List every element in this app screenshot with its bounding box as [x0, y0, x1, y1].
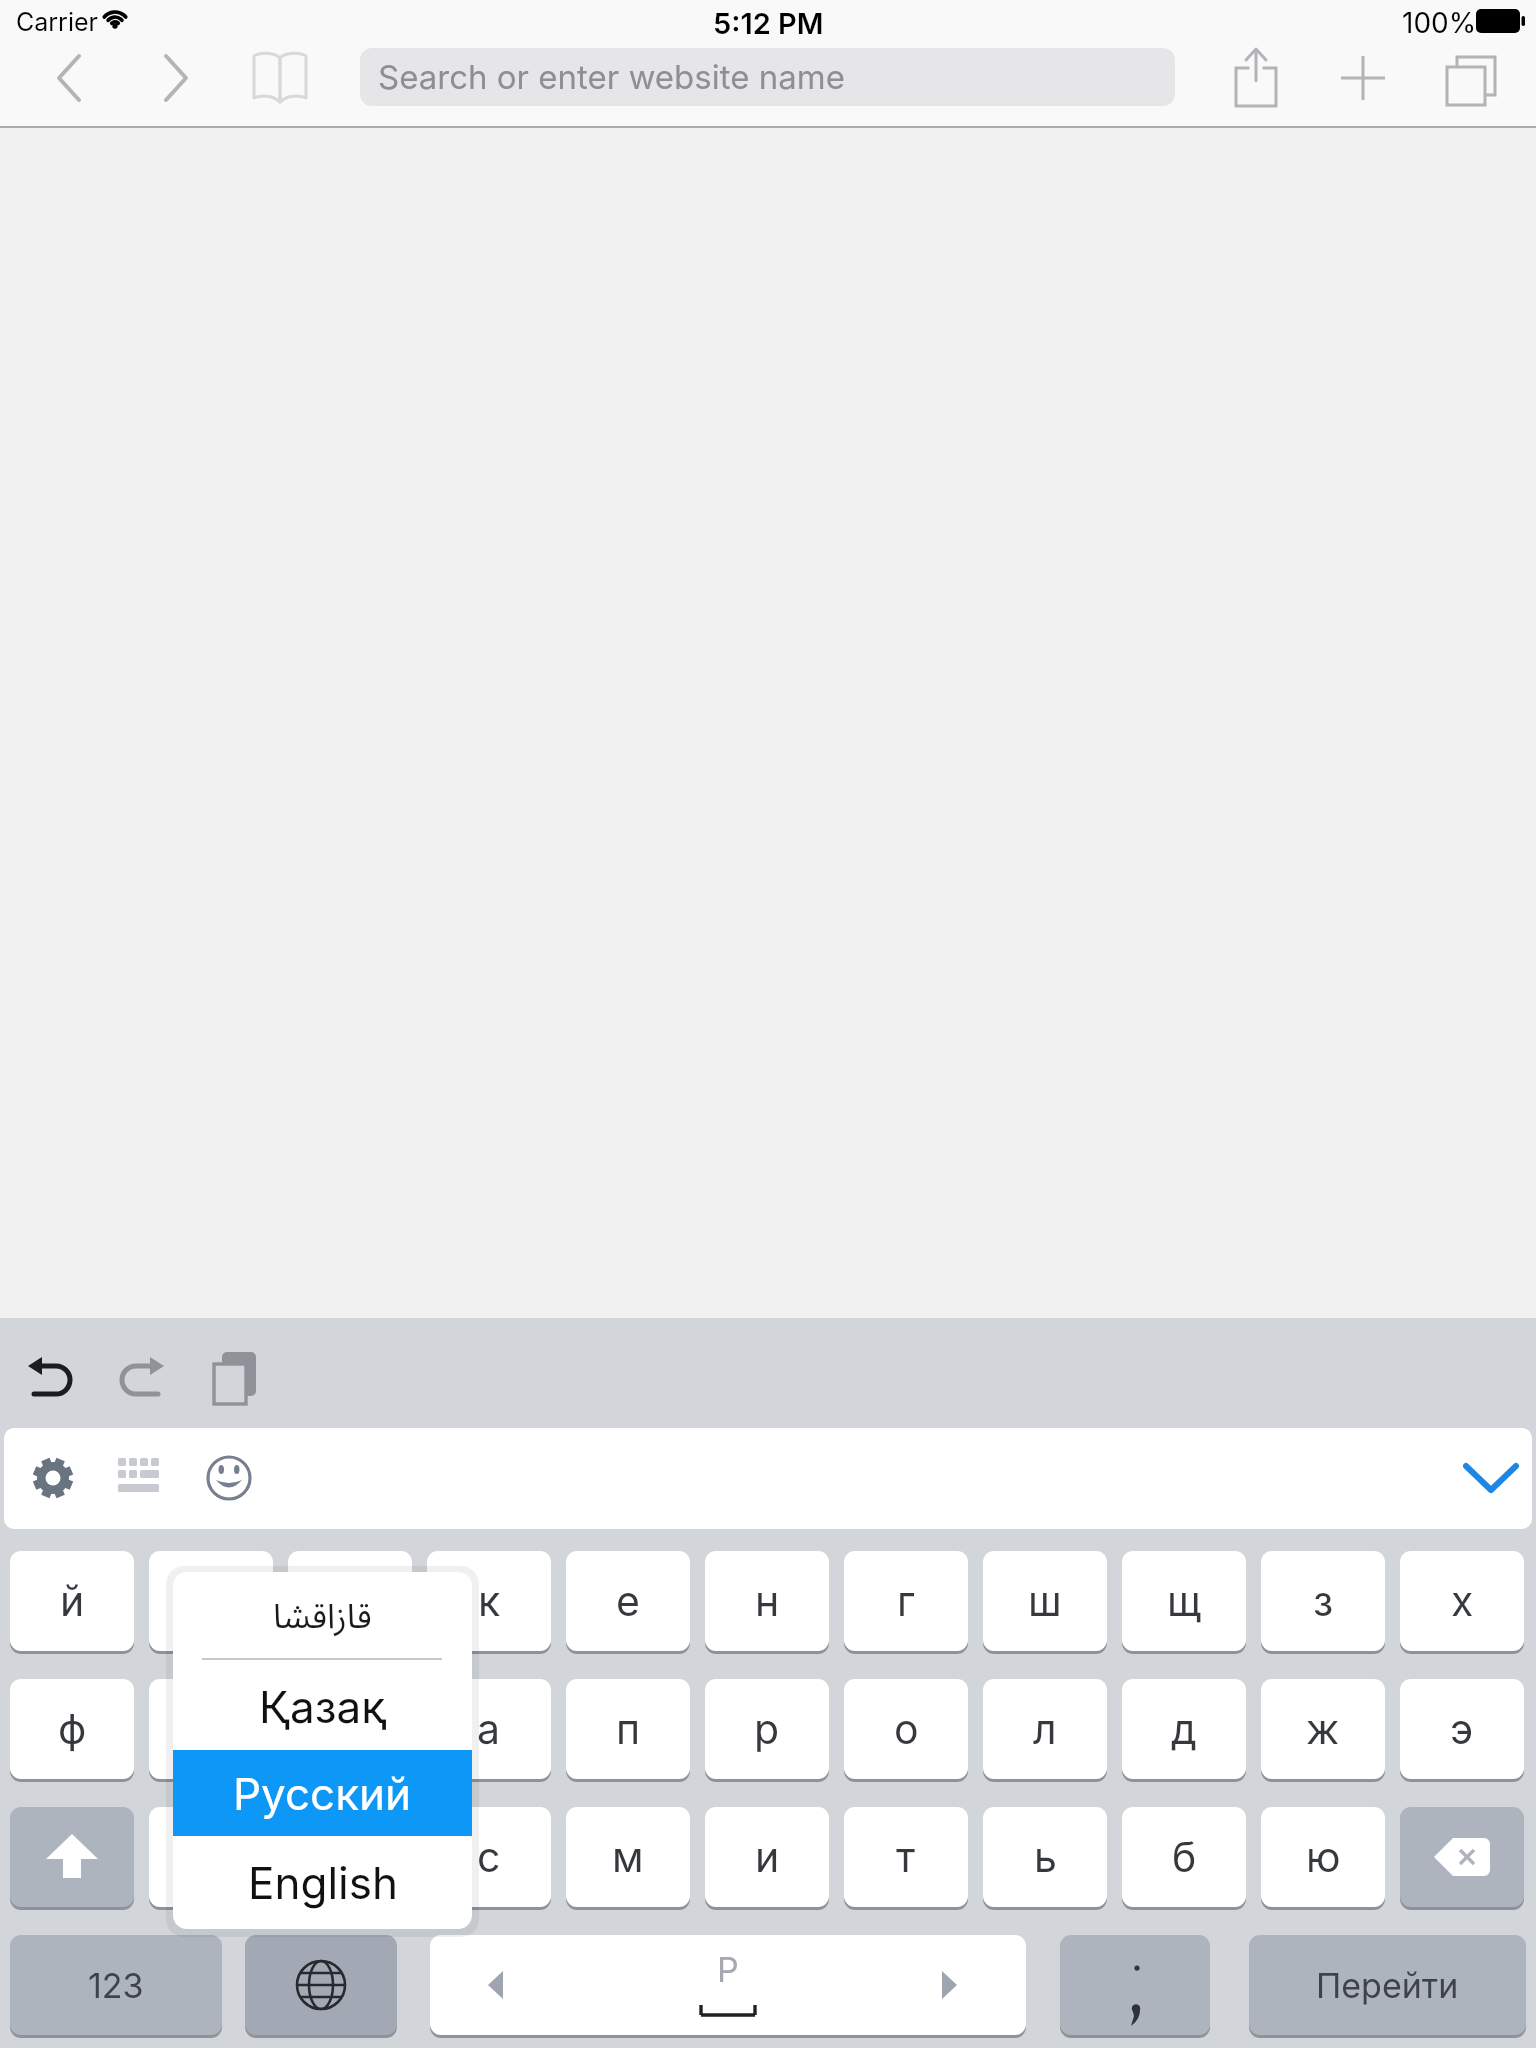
- staticText: и: [755, 1832, 780, 1882]
- staticText: ю: [1306, 1832, 1341, 1882]
- button[interactable]: ж: [1261, 1679, 1385, 1779]
- staticText: 100%: [1402, 6, 1477, 40]
- button[interactable]: ш: [983, 1551, 1107, 1651]
- staticText: Р: [717, 1949, 739, 1990]
- button[interactable]: ч: [288, 1807, 412, 1907]
- staticText: я: [200, 1832, 223, 1882]
- button[interactable]: قازاقشا: [173, 1577, 472, 1653]
- staticText: о: [894, 1704, 919, 1754]
- staticText: Перейти: [1316, 1965, 1459, 2006]
- staticText: Search or enter website name: [378, 57, 845, 97]
- staticText: х: [1451, 1576, 1474, 1626]
- staticText: English: [248, 1856, 398, 1909]
- button[interactable]: [245, 1935, 397, 2035]
- button[interactable]: [10, 1807, 134, 1907]
- button[interactable]: [118, 1356, 166, 1404]
- button[interactable]: [118, 1458, 166, 1498]
- button[interactable]: з: [1261, 1551, 1385, 1651]
- button[interactable]: [1444, 54, 1498, 108]
- staticText: в: [338, 1704, 362, 1754]
- staticText: ш: [1028, 1576, 1062, 1626]
- staticText: з: [1313, 1576, 1334, 1626]
- staticText: й: [60, 1576, 85, 1626]
- staticText: л: [1033, 1704, 1057, 1754]
- staticText: ч: [338, 1832, 362, 1882]
- staticText: ь: [1034, 1832, 1057, 1882]
- button[interactable]: н: [705, 1551, 829, 1651]
- button[interactable]: т: [844, 1807, 968, 1907]
- button[interactable]: р: [705, 1679, 829, 1779]
- button[interactable]: ю: [1261, 1807, 1385, 1907]
- button[interactable]: е: [566, 1551, 690, 1651]
- button[interactable]: х: [1400, 1551, 1524, 1651]
- button[interactable]: Р: [430, 1935, 1026, 2035]
- button[interactable]: [26, 1356, 74, 1404]
- button[interactable]: [157, 52, 193, 104]
- button[interactable]: о: [844, 1679, 968, 1779]
- staticText: ж: [1306, 1704, 1340, 1754]
- button[interactable]: с: [427, 1807, 551, 1907]
- staticText: ф: [58, 1704, 87, 1754]
- button[interactable]: [30, 1455, 76, 1501]
- button[interactable]: Search or enter website name: [360, 48, 1175, 106]
- staticText: Қазақ: [259, 1680, 386, 1733]
- staticText: قازاقشا: [273, 1592, 372, 1638]
- button[interactable]: English: [173, 1836, 472, 1929]
- button[interactable]: б: [1122, 1807, 1246, 1907]
- staticText: щ: [1167, 1576, 1202, 1626]
- staticText: р: [754, 1704, 780, 1754]
- button[interactable]: щ: [1122, 1551, 1246, 1651]
- button[interactable]: [210, 1352, 260, 1406]
- button[interactable]: я: [149, 1807, 273, 1907]
- staticText: 5:12 PM: [713, 6, 824, 41]
- button[interactable]: Перейти: [1249, 1935, 1526, 2035]
- staticText: 123: [88, 1965, 144, 2006]
- button[interactable]: э: [1400, 1679, 1524, 1779]
- button[interactable]: ы: [149, 1679, 273, 1779]
- button[interactable]: п: [566, 1679, 690, 1779]
- button[interactable]: [1463, 1463, 1519, 1495]
- staticText: е: [616, 1576, 640, 1626]
- staticText: п: [616, 1704, 641, 1754]
- button[interactable]: и: [705, 1807, 829, 1907]
- button[interactable]: ф: [10, 1679, 134, 1779]
- staticText: н: [755, 1576, 780, 1626]
- staticText: с: [477, 1832, 501, 1882]
- button[interactable]: в: [288, 1679, 412, 1779]
- button[interactable]: 123: [10, 1935, 222, 2035]
- button[interactable]: й: [10, 1551, 134, 1651]
- button[interactable]: г: [844, 1551, 968, 1651]
- button[interactable]: [250, 50, 310, 106]
- button[interactable]: [206, 1455, 252, 1501]
- staticText: а: [477, 1704, 501, 1754]
- button[interactable]: [1060, 1935, 1210, 2035]
- staticText: к: [478, 1576, 501, 1626]
- staticText: т: [896, 1832, 916, 1882]
- button[interactable]: [52, 52, 88, 104]
- button[interactable]: л: [983, 1679, 1107, 1779]
- staticText: г: [897, 1576, 915, 1626]
- button[interactable]: д: [1122, 1679, 1246, 1779]
- staticText: м: [612, 1832, 644, 1882]
- staticText: Русский: [233, 1767, 412, 1820]
- button[interactable]: а: [427, 1679, 551, 1779]
- button[interactable]: Русский: [173, 1750, 472, 1836]
- button[interactable]: ь: [983, 1807, 1107, 1907]
- staticText: у: [338, 1576, 362, 1626]
- staticText: Carrier: [16, 7, 98, 37]
- button[interactable]: м: [566, 1807, 690, 1907]
- button[interactable]: Қазақ: [173, 1662, 472, 1750]
- button[interactable]: [1232, 46, 1282, 108]
- button[interactable]: [1400, 1807, 1524, 1907]
- staticText: ы: [196, 1704, 227, 1754]
- button[interactable]: [1341, 56, 1385, 100]
- button[interactable]: к: [427, 1551, 551, 1651]
- staticText: э: [1450, 1704, 1474, 1754]
- staticText: д: [1171, 1704, 1197, 1754]
- button[interactable]: у: [288, 1551, 412, 1651]
- button[interactable]: ц: [149, 1551, 273, 1651]
- staticText: б: [1172, 1832, 1197, 1882]
